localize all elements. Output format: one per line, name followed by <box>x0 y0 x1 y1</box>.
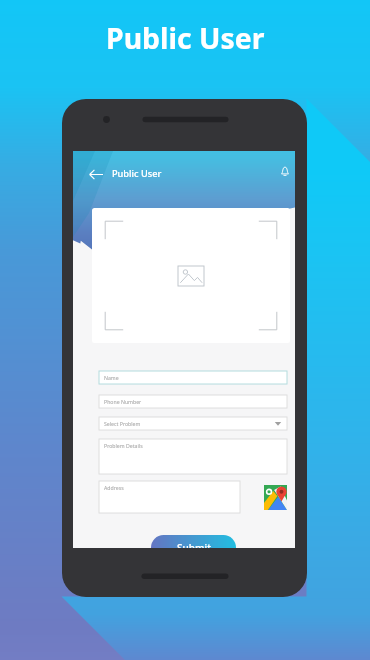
button[interactable]: Notifications <box>276 163 293 180</box>
staticText: Phone Number <box>104 398 142 405</box>
button[interactable]: Problem Details <box>99 439 287 474</box>
staticText: Address <box>104 484 124 491</box>
staticText: Name <box>104 374 119 381</box>
staticText: Select Problem <box>104 420 141 427</box>
button[interactable]: Open map <box>264 485 287 510</box>
button[interactable]: Name <box>99 371 287 384</box>
button[interactable]: Select Problem <box>99 417 287 430</box>
staticText: Public User <box>112 167 162 180</box>
button[interactable]: Add photo <box>92 208 290 343</box>
button[interactable]: Submit <box>151 535 236 548</box>
button[interactable]: Back <box>86 164 106 184</box>
button[interactable]: Phone Number <box>99 395 287 408</box>
staticText: Problem Details <box>104 442 143 449</box>
staticText: Public User <box>106 19 265 58</box>
staticText: Submit <box>177 541 211 548</box>
button[interactable]: Address <box>99 481 240 513</box>
